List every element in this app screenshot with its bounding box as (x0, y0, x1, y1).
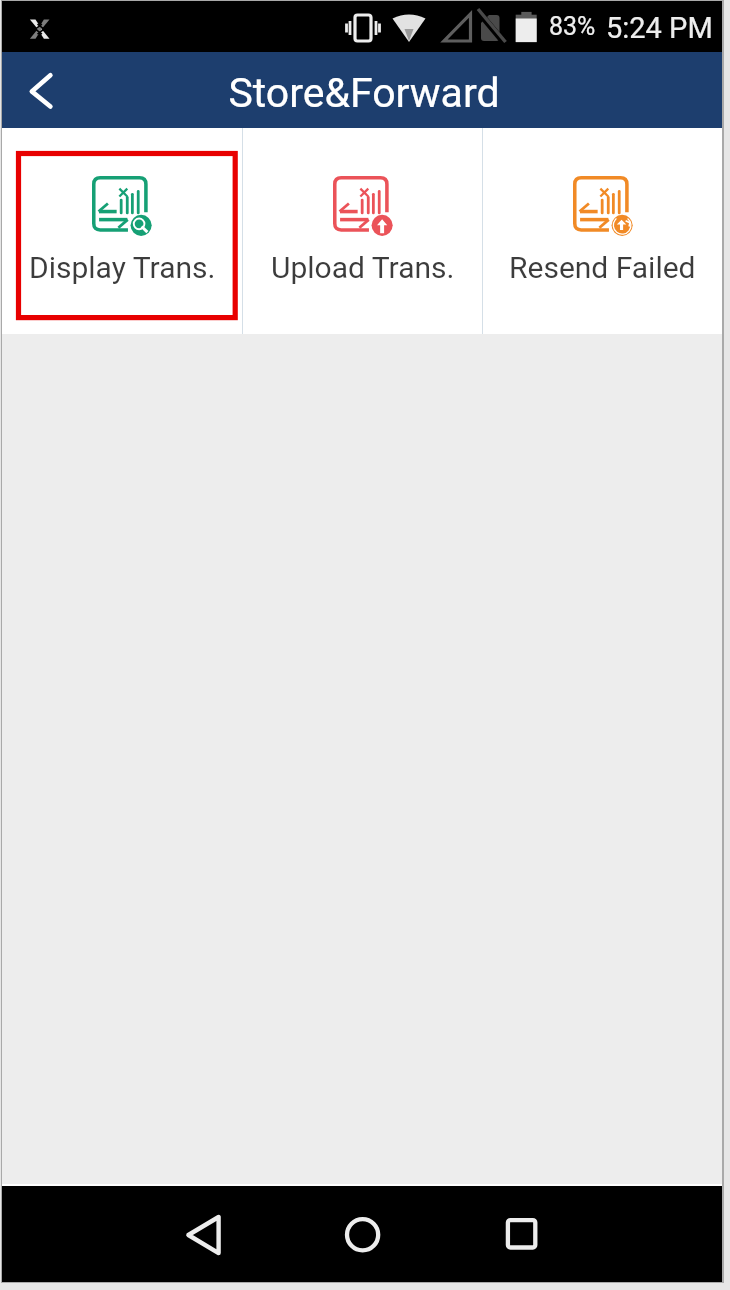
staticText: 5:24 PM (606, 11, 713, 45)
button[interactable]: Back (157, 1189, 247, 1279)
button[interactable]: Display Trans. (2, 128, 242, 334)
button[interactable]: Recents (478, 1189, 568, 1279)
staticText: Upload Trans. (271, 250, 455, 285)
staticText: Display Trans. (29, 250, 216, 285)
staticText: Store&Forward (228, 69, 500, 117)
button[interactable]: Home (318, 1189, 408, 1279)
staticText: Resend Failed (509, 250, 696, 285)
staticText: 83% (549, 12, 596, 41)
button[interactable]: Back (2, 52, 78, 128)
button[interactable]: Upload Trans. (243, 128, 482, 334)
button[interactable]: Resend Failed (483, 128, 722, 334)
